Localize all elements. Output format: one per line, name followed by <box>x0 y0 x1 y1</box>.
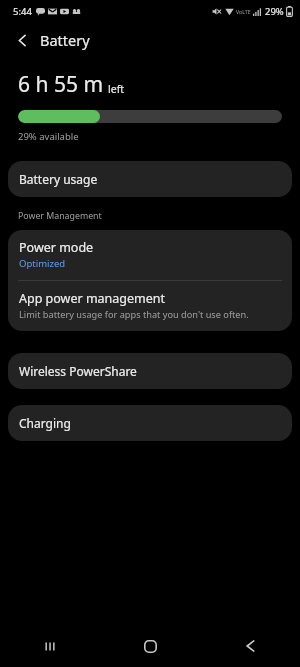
button[interactable]: Back <box>200 625 300 667</box>
staticText: 6 h 55 m <box>18 70 104 99</box>
staticText: Power mode <box>19 239 94 256</box>
staticText: Power Management <box>18 210 102 222</box>
button[interactable]: Recents <box>0 625 100 667</box>
button[interactable]: Battery usage <box>8 161 292 197</box>
staticText: VoLTE <box>236 8 251 15</box>
staticText: Battery usage <box>19 171 98 187</box>
button[interactable]: Power mode <box>8 230 292 280</box>
staticText: Battery <box>40 30 90 50</box>
staticText: 5:44 <box>13 5 32 18</box>
staticText: Optimized <box>19 257 66 270</box>
button[interactable]: Charging <box>8 405 292 441</box>
staticText: Wireless PowerShare <box>19 363 137 379</box>
button[interactable]: Navigate up <box>7 25 37 55</box>
staticText: left <box>108 82 125 96</box>
staticText: App power management <box>19 290 166 307</box>
staticText: Limit battery usage for apps that you do… <box>19 308 249 321</box>
button[interactable]: App power management <box>8 281 292 331</box>
staticText: 29% available <box>18 130 79 143</box>
button[interactable]: Home <box>100 625 200 667</box>
staticText: 29% <box>265 5 284 18</box>
staticText: Charging <box>19 415 71 431</box>
button[interactable]: Wireless PowerShare <box>8 353 292 389</box>
